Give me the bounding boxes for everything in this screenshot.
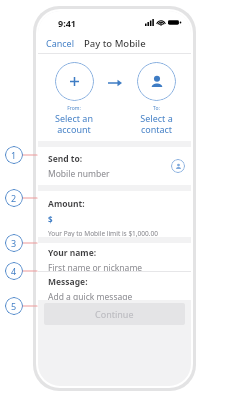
staticText: 1: [11, 149, 17, 161]
button[interactable]: Select a contact: [128, 62, 184, 135]
staticText: Mobile number: [48, 168, 110, 180]
staticText: 2: [11, 192, 17, 204]
staticText: From:: [67, 105, 81, 112]
button[interactable]: Send to:: [38, 147, 191, 185]
staticText: To:: [153, 105, 160, 112]
other: Select a contact: [137, 62, 176, 101]
staticText: Your name:: [48, 247, 97, 259]
button[interactable]: Amount:: [38, 191, 191, 237]
button[interactable]: Select an account: [46, 62, 102, 135]
button[interactable]: Continue: [44, 303, 185, 325]
staticText: 5: [11, 300, 17, 312]
button[interactable]: Your name:: [38, 243, 191, 271]
staticText: 9:41: [58, 17, 76, 29]
staticText: 4: [11, 265, 17, 277]
button[interactable]: Message:: [38, 272, 191, 300]
button[interactable]: Cancel: [38, 34, 83, 52]
staticText: Add a quick message: [48, 291, 133, 300]
staticText: Cancel: [46, 37, 75, 49]
staticText: Continue: [95, 308, 134, 320]
button[interactable]: Choose from contacts: [171, 159, 185, 173]
staticText: $: [48, 214, 53, 225]
staticText: Send to:: [48, 153, 83, 165]
staticText: Select a contact: [140, 112, 173, 135]
staticText: Select an account: [55, 112, 93, 135]
staticText: Amount:: [48, 198, 85, 210]
staticText: Your Pay to Mobile limit is $1,000.00: [48, 229, 158, 237]
staticText: First name or nickname: [48, 262, 143, 271]
other: Select an account: [55, 62, 94, 101]
staticText: Pay to Mobile: [84, 37, 146, 50]
staticText: 3: [11, 237, 17, 249]
staticText: Message:: [48, 276, 88, 288]
